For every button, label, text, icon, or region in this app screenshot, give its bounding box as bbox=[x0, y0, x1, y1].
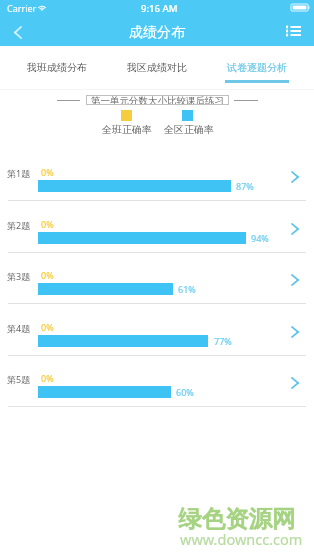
button[interactable]: Menu bbox=[281, 18, 311, 46]
staticText: 第2题 bbox=[7, 219, 31, 231]
button[interactable]: Back bbox=[3, 18, 33, 46]
staticText: 61% bbox=[178, 283, 196, 295]
staticText: www.downcc.com bbox=[180, 529, 303, 549]
staticText: 第3题 bbox=[7, 270, 31, 282]
staticText: 绿色资源网 bbox=[178, 504, 296, 534]
staticText: 全班正确率 bbox=[102, 123, 152, 136]
button[interactable]: 第3题 bbox=[0, 253, 314, 304]
button[interactable]: 试卷逐题分析 bbox=[207, 46, 307, 90]
staticText: 0% bbox=[41, 372, 54, 384]
staticText: 87% bbox=[236, 180, 254, 192]
staticText: 0% bbox=[41, 321, 54, 333]
staticText: 我区成绩对比 bbox=[127, 61, 187, 74]
staticText: 我班成绩分布 bbox=[27, 61, 87, 74]
staticText: 第5题 bbox=[7, 373, 31, 385]
button[interactable]: 第2题 bbox=[0, 202, 314, 253]
staticText: 77% bbox=[214, 335, 232, 347]
button[interactable]: 第4题 bbox=[0, 305, 314, 356]
button[interactable]: 我区成绩对比 bbox=[107, 46, 207, 90]
staticText: 成绩分布 bbox=[129, 24, 185, 42]
staticText: 第1题 bbox=[7, 167, 31, 179]
staticText: 0% bbox=[41, 218, 54, 230]
staticText: 0% bbox=[41, 269, 54, 281]
staticText: 94% bbox=[251, 232, 269, 244]
staticText: 9:16 AM bbox=[141, 2, 178, 15]
staticText: Carrier bbox=[7, 2, 37, 14]
staticText: 试卷逐题分析 bbox=[227, 61, 287, 74]
staticText: 0% bbox=[41, 166, 54, 178]
staticText: 第一单元分数大小比较课后练习 bbox=[91, 95, 224, 105]
button[interactable]: 我班成绩分布 bbox=[7, 46, 107, 90]
staticText: 全区正确率 bbox=[164, 123, 214, 136]
button[interactable]: 第1题 bbox=[0, 150, 314, 201]
staticText: 第4题 bbox=[7, 322, 31, 334]
staticText: 60% bbox=[176, 386, 194, 398]
button[interactable]: 第5题 bbox=[0, 356, 314, 407]
